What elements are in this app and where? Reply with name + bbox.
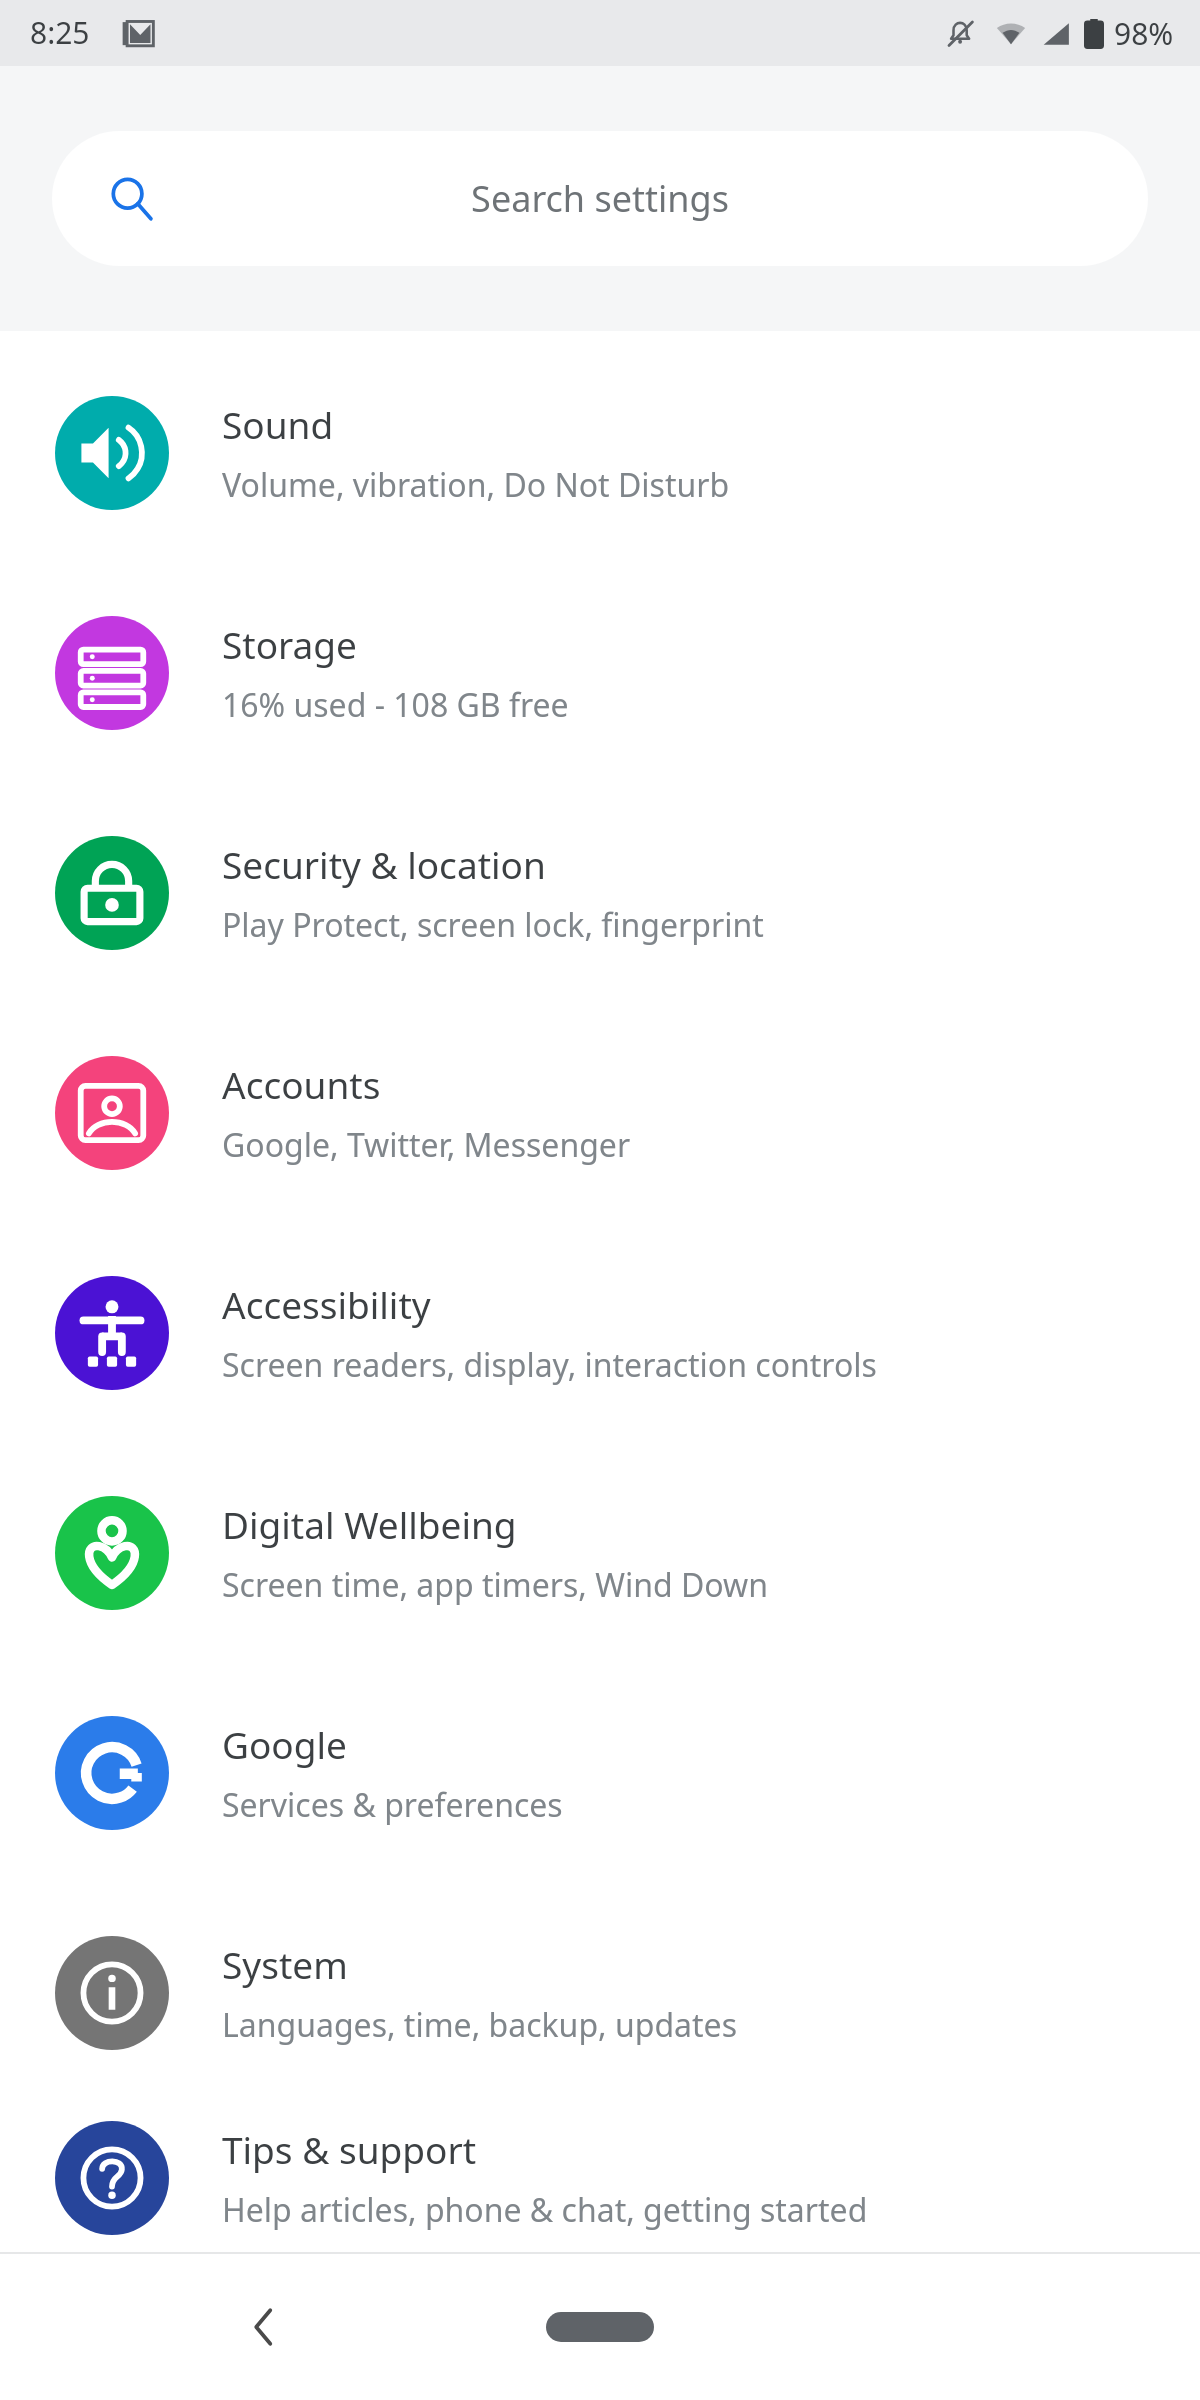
button[interactable]: Security & location <box>0 783 1200 1003</box>
button[interactable]: Tips & support <box>0 2103 1200 2252</box>
staticText: System <box>222 1939 348 1989</box>
staticText: 8:25 <box>30 12 90 53</box>
staticText: Accessibility <box>222 1279 431 1329</box>
staticText: Play Protect, screen lock, fingerprint <box>222 903 764 947</box>
staticText: Services & preferences <box>222 1783 563 1827</box>
staticText: Volume, vibration, Do Not Disturb <box>222 463 730 507</box>
button[interactable]: Storage <box>0 563 1200 783</box>
staticText: Search settings <box>471 174 729 223</box>
staticText: 16% used - 108 GB free <box>222 683 569 727</box>
button[interactable]: Back <box>205 2267 325 2387</box>
staticText: Tips & support <box>222 2124 477 2174</box>
button[interactable]: Home <box>546 2312 654 2342</box>
staticText: Google, Twitter, Messenger <box>222 1123 631 1167</box>
staticText: Sound <box>222 399 334 449</box>
staticText: Screen time, app timers, Wind Down <box>222 1563 769 1607</box>
staticText: Google <box>222 1719 347 1769</box>
button[interactable]: Sound <box>0 343 1200 563</box>
button[interactable]: Digital Wellbeing <box>0 1443 1200 1663</box>
staticText: 98% <box>1114 13 1174 54</box>
button[interactable]: Search settings <box>52 131 1148 266</box>
staticText: Languages, time, backup, updates <box>222 2003 737 2047</box>
staticText: Security & location <box>222 839 546 889</box>
staticText: Accounts <box>222 1059 381 1109</box>
staticText: Screen readers, display, interaction con… <box>222 1343 877 1387</box>
staticText: Help articles, phone & chat, getting sta… <box>222 2188 868 2232</box>
staticText: Digital Wellbeing <box>222 1499 517 1549</box>
button[interactable]: Accessibility <box>0 1223 1200 1443</box>
staticText: Storage <box>222 619 357 669</box>
button[interactable]: Google <box>0 1663 1200 1883</box>
button[interactable]: System <box>0 1883 1200 2103</box>
button[interactable]: Accounts <box>0 1003 1200 1223</box>
